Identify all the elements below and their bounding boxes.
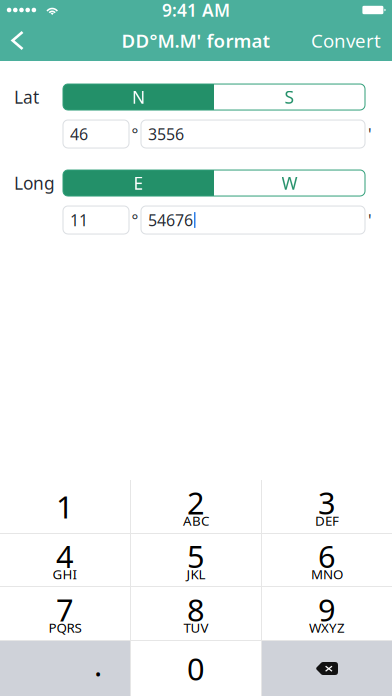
staticText: 7 <box>56 589 74 630</box>
staticText: 8 <box>187 589 205 630</box>
button[interactable]: 4 <box>0 534 130 586</box>
staticText: E <box>133 171 143 194</box>
button[interactable]: 8 <box>131 587 261 640</box>
staticText: DD°M.M' format <box>121 28 270 53</box>
button[interactable]: 9 <box>262 587 392 640</box>
staticText: Convert <box>311 28 381 53</box>
staticText: ° <box>131 209 138 231</box>
button[interactable]: 5 <box>131 534 261 586</box>
button[interactable]: . <box>0 641 130 696</box>
staticText: JKL <box>186 565 205 583</box>
button[interactable]: 7 <box>0 587 130 640</box>
staticText: WXYZ <box>309 619 345 636</box>
staticText: S <box>284 85 294 108</box>
button[interactable]: E <box>63 170 214 196</box>
staticText: 2 <box>187 482 205 523</box>
staticText: 9:41 AM <box>162 0 230 21</box>
staticText: ' <box>368 123 372 145</box>
staticText: Long <box>14 171 55 194</box>
staticText: Lat <box>14 85 39 108</box>
staticText: 11 <box>70 209 88 231</box>
staticText: N <box>132 85 145 108</box>
button[interactable]: Convert <box>297 20 392 61</box>
staticText: DEF <box>315 512 339 529</box>
staticText: 3 <box>318 482 336 523</box>
staticText: . <box>94 644 102 685</box>
staticText: 6 <box>318 536 336 576</box>
staticText: ' <box>368 209 372 231</box>
staticText: PQRS <box>48 619 81 636</box>
staticText: 0 <box>187 648 205 689</box>
button[interactable]: Delete <box>262 641 392 696</box>
staticText: 4 <box>56 536 74 576</box>
staticText: 1 <box>56 486 74 527</box>
button[interactable]: 3 <box>262 480 392 533</box>
button[interactable]: S <box>214 84 365 110</box>
button[interactable]: N <box>63 84 214 110</box>
button[interactable]: 2 <box>131 480 261 533</box>
staticText: ABC <box>183 512 209 529</box>
button[interactable]: Back <box>0 20 36 61</box>
staticText: MNO <box>311 565 343 583</box>
button[interactable]: W <box>214 170 365 196</box>
staticText: ° <box>131 123 138 145</box>
staticText: W <box>281 171 297 194</box>
button[interactable]: 6 <box>262 534 392 586</box>
staticText: 5 <box>187 536 205 576</box>
staticText: 54676 <box>148 209 193 231</box>
staticText: 9 <box>318 589 336 630</box>
staticText: TUV <box>183 619 208 636</box>
button[interactable]: 1 <box>0 480 130 533</box>
staticText: GHI <box>52 565 77 583</box>
button[interactable]: 0 <box>131 641 261 696</box>
staticText: 46 <box>70 123 88 145</box>
staticText: 3556 <box>148 123 184 145</box>
